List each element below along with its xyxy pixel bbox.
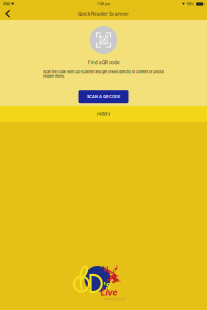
staticText: Find a QR code <box>88 60 119 65</box>
staticText: History <box>97 112 110 116</box>
staticText: 's <box>102 280 110 291</box>
staticText: iPad <box>2 2 9 6</box>
button[interactable]: Back <box>0 8 25 20</box>
staticText: 7:06 pm <box>97 2 110 6</box>
staticText: 58% <box>186 2 194 6</box>
staticText: entertainment <box>103 297 125 301</box>
button[interactable]: SCAN A QR CODE <box>78 90 128 103</box>
staticText: Live <box>100 287 117 297</box>
staticText: Quick Reader Scanner <box>78 11 129 17</box>
staticText: Scan the code with QR scanner and get li… <box>43 70 164 79</box>
staticText: SCAN A QR CODE <box>87 94 120 99</box>
